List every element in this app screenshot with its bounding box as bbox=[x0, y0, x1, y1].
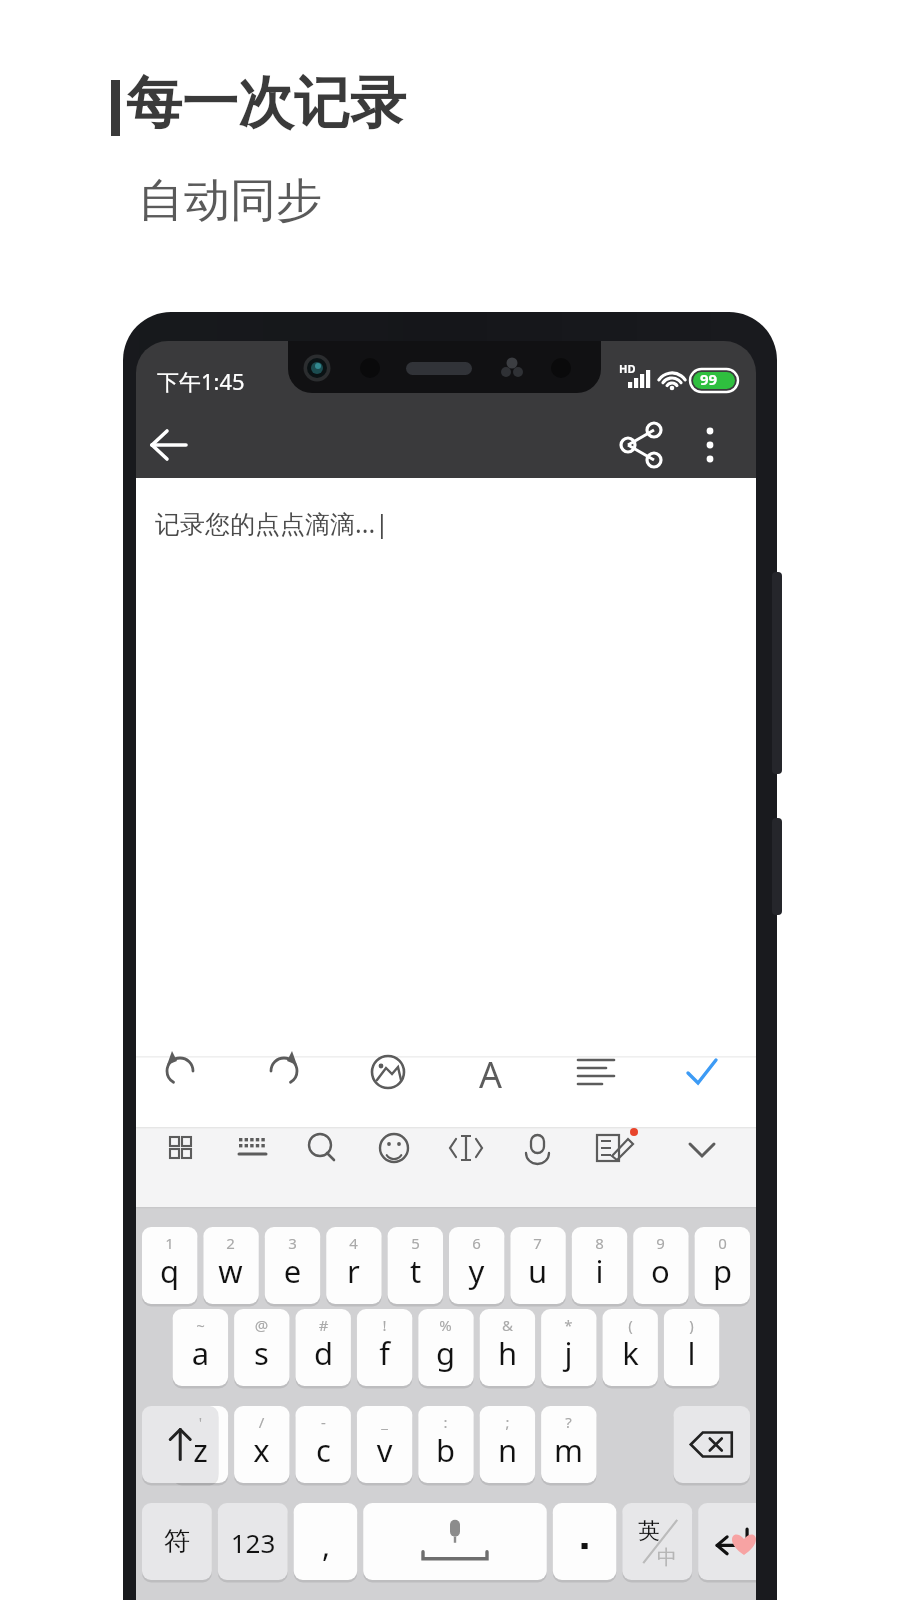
button[interactable]: l bbox=[664, 1309, 719, 1386]
button[interactable]: Back bbox=[140, 417, 198, 475]
staticText: @ bbox=[234, 1315, 289, 1335]
staticText: 自动同步 bbox=[138, 172, 322, 230]
button[interactable]: Space bbox=[363, 1503, 547, 1580]
staticText: h bbox=[480, 1332, 535, 1380]
button[interactable]: x bbox=[234, 1406, 289, 1483]
button[interactable]: t bbox=[388, 1227, 443, 1304]
button[interactable]: s bbox=[234, 1309, 289, 1386]
staticText: , bbox=[294, 1525, 358, 1565]
staticText: 英 bbox=[614, 1517, 684, 1557]
staticText: 9 bbox=[633, 1233, 688, 1253]
button[interactable]: Handwriting bbox=[582, 1122, 640, 1174]
staticText: 7 bbox=[510, 1233, 565, 1253]
button[interactable]: Key bbox=[142, 1406, 218, 1483]
button[interactable]: a bbox=[173, 1309, 228, 1386]
staticText: # bbox=[296, 1315, 351, 1335]
button[interactable]: Undo bbox=[152, 1044, 208, 1100]
button[interactable]: Insert image bbox=[360, 1044, 416, 1100]
staticText: s bbox=[234, 1332, 289, 1380]
button[interactable]: h bbox=[480, 1309, 535, 1386]
staticText: i bbox=[572, 1250, 627, 1298]
button[interactable]: w bbox=[203, 1227, 258, 1304]
staticText: b bbox=[418, 1429, 473, 1477]
button[interactable]: p bbox=[695, 1227, 750, 1304]
button[interactable]: Keyboard layout bbox=[226, 1122, 278, 1174]
staticText: 3 bbox=[265, 1233, 320, 1253]
staticText: q bbox=[142, 1250, 197, 1298]
button[interactable]: Done bbox=[673, 1044, 729, 1100]
button[interactable]: Text style bbox=[464, 1044, 520, 1100]
button[interactable]: o bbox=[633, 1227, 688, 1304]
staticText: u bbox=[510, 1250, 565, 1298]
staticText: v bbox=[357, 1429, 412, 1477]
staticText: ' bbox=[173, 1412, 228, 1432]
staticText: w bbox=[203, 1250, 258, 1298]
staticText: 4 bbox=[326, 1233, 381, 1253]
staticText: e bbox=[265, 1250, 320, 1298]
button[interactable]: k bbox=[603, 1309, 658, 1386]
staticText: f bbox=[357, 1332, 412, 1380]
staticText: A bbox=[479, 1050, 503, 1099]
button[interactable]: n bbox=[480, 1406, 535, 1483]
staticText: * bbox=[541, 1315, 596, 1335]
button[interactable]: q bbox=[142, 1227, 197, 1304]
staticText: % bbox=[418, 1315, 473, 1335]
staticText: k bbox=[603, 1332, 658, 1380]
button[interactable]: z bbox=[173, 1406, 228, 1483]
button[interactable]: j bbox=[541, 1309, 596, 1386]
button[interactable]: Numbers bbox=[218, 1503, 288, 1580]
button[interactable]: r bbox=[326, 1227, 381, 1304]
staticText: p bbox=[695, 1250, 750, 1298]
staticText: 6 bbox=[449, 1233, 504, 1253]
button[interactable]: i bbox=[572, 1227, 627, 1304]
staticText: j bbox=[541, 1332, 596, 1380]
button[interactable]: d bbox=[296, 1309, 351, 1386]
staticText: 2 bbox=[203, 1233, 258, 1253]
staticText: & bbox=[480, 1315, 535, 1335]
button[interactable]: Move cursor bbox=[440, 1122, 492, 1174]
button[interactable]: f bbox=[357, 1309, 412, 1386]
staticText: a bbox=[173, 1332, 228, 1380]
button[interactable]: Hide keyboard bbox=[676, 1122, 728, 1174]
staticText: d bbox=[296, 1332, 351, 1380]
staticText: 99 bbox=[700, 369, 718, 389]
button[interactable]: Alignment bbox=[568, 1044, 624, 1100]
button[interactable]: b bbox=[418, 1406, 473, 1483]
staticText: g bbox=[418, 1332, 473, 1380]
button[interactable]: g bbox=[418, 1309, 473, 1386]
button[interactable]: Period bbox=[553, 1503, 617, 1580]
button[interactable]: c bbox=[296, 1406, 351, 1483]
staticText: x bbox=[234, 1429, 289, 1477]
button[interactable]: Panels bbox=[154, 1122, 206, 1174]
staticText: 符 bbox=[142, 1525, 212, 1565]
staticText: 记录您的点点滴滴...| bbox=[155, 506, 389, 540]
staticText: 1 bbox=[142, 1233, 197, 1253]
button[interactable]: Comma bbox=[294, 1503, 358, 1580]
button[interactable]: Key bbox=[674, 1406, 750, 1483]
staticText: 5 bbox=[388, 1233, 443, 1253]
button[interactable]: More options bbox=[682, 417, 738, 475]
button[interactable]: v bbox=[357, 1406, 412, 1483]
staticText: o bbox=[633, 1250, 688, 1298]
button[interactable]: e bbox=[265, 1227, 320, 1304]
button[interactable]: u bbox=[510, 1227, 565, 1304]
staticText: ~ bbox=[173, 1315, 228, 1335]
staticText: c bbox=[296, 1429, 351, 1477]
button[interactable]: Search bbox=[297, 1122, 349, 1174]
staticText: HD bbox=[619, 361, 636, 376]
button[interactable]: Enter bbox=[698, 1503, 768, 1580]
staticText: ! bbox=[357, 1315, 412, 1335]
button[interactable]: Voice input bbox=[511, 1122, 563, 1174]
button[interactable]: Redo bbox=[256, 1044, 312, 1100]
staticText: m bbox=[541, 1429, 596, 1477]
button[interactable]: Share bbox=[612, 417, 670, 475]
button[interactable]: Symbols bbox=[142, 1503, 212, 1580]
button[interactable]: Language bbox=[622, 1503, 692, 1580]
staticText: ? bbox=[541, 1412, 596, 1432]
button[interactable]: m bbox=[541, 1406, 596, 1483]
button[interactable]: y bbox=[449, 1227, 504, 1304]
staticText: ) bbox=[664, 1315, 719, 1335]
staticText: z bbox=[173, 1429, 228, 1477]
staticText: : bbox=[418, 1412, 473, 1432]
button[interactable]: Emoji bbox=[368, 1122, 420, 1174]
